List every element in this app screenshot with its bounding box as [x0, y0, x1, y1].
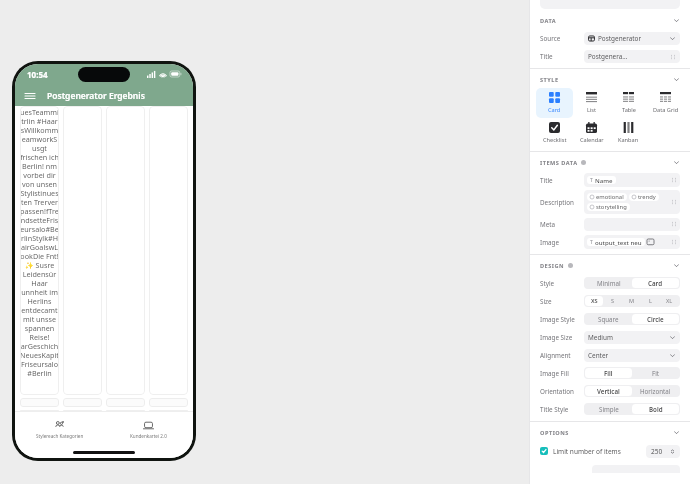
staticText: Image Fill	[540, 369, 584, 378]
staticText: T	[590, 239, 593, 246]
button[interactable]: XS	[585, 296, 603, 306]
staticText: Checklist	[543, 136, 567, 144]
staticText: Fill	[604, 369, 613, 377]
button[interactable]: STYLE	[540, 71, 680, 88]
staticText: Center	[588, 351, 609, 360]
button[interactable]	[63, 106, 102, 395]
staticText: Postgenerator Ergebnis	[588, 52, 629, 61]
button[interactable]: DESIGN	[540, 257, 680, 274]
button[interactable]: Kundenkartei 2.0	[104, 412, 193, 446]
button[interactable]: Postgenerator	[588, 32, 676, 45]
button[interactable]: T	[587, 176, 677, 184]
button[interactable]: Fit	[632, 368, 679, 378]
button[interactable]: Simple	[585, 404, 632, 414]
staticText: Description	[540, 198, 584, 207]
button[interactable]: Kanban	[610, 118, 647, 148]
button[interactable]: ITEMS DATA	[540, 154, 680, 171]
button[interactable]: emotional	[587, 193, 677, 211]
button[interactable]: Medium	[588, 331, 676, 344]
button[interactable]: Table	[610, 88, 647, 118]
button[interactable]	[106, 398, 145, 407]
staticText: Orientation	[540, 387, 584, 396]
staticText: Minimal	[597, 279, 621, 287]
staticText: trendy	[638, 193, 656, 201]
button[interactable]: Center	[588, 349, 676, 362]
staticText: Calendar	[580, 136, 604, 144]
staticText: Style	[540, 279, 584, 288]
button[interactable]: uesTeammitrlin #HaarsWillkommeamworkSusg…	[20, 106, 59, 395]
staticText: Title	[540, 52, 584, 61]
staticText: Kanban	[618, 136, 639, 144]
staticText: Simple	[599, 405, 619, 413]
staticText: Fit	[652, 369, 660, 377]
button[interactable]	[149, 398, 188, 407]
button[interactable]: Stylereach Kategorien	[15, 412, 104, 446]
button[interactable]: Postgenerator Ergebnis	[588, 50, 676, 63]
button[interactable]: XL	[660, 296, 679, 306]
staticText: 10:54	[27, 69, 48, 80]
button[interactable]: Menu	[23, 89, 37, 103]
staticText: storytelling	[596, 203, 627, 211]
staticText: List	[587, 106, 597, 114]
button[interactable]: Calendar	[573, 118, 610, 148]
button[interactable]: OPTIONS	[540, 424, 680, 441]
button[interactable]: Minimal	[585, 278, 632, 288]
staticText: Card	[648, 279, 663, 287]
button[interactable]: DATA	[540, 12, 680, 29]
staticText: Bold	[649, 405, 663, 413]
staticText: DESIGN	[540, 262, 565, 270]
button[interactable]: T	[587, 238, 677, 246]
button[interactable]: 250	[651, 445, 675, 458]
button[interactable]: Horizontal	[632, 386, 679, 396]
staticText: Card	[548, 106, 561, 114]
staticText: emotional	[596, 193, 624, 201]
button[interactable]	[149, 106, 188, 395]
button[interactable]	[587, 221, 677, 228]
staticText: output_text neu	[595, 238, 642, 246]
staticText: 250	[651, 447, 663, 456]
staticText: Title Style	[540, 405, 584, 414]
staticText: Vertical	[597, 387, 620, 395]
button[interactable]: Checklist	[536, 118, 573, 148]
staticText: S	[611, 297, 615, 305]
button[interactable]: Limit number of items	[540, 441, 680, 461]
button[interactable]	[106, 106, 145, 395]
button[interactable]: Vertical	[585, 386, 632, 396]
staticText: Alignment	[540, 351, 584, 360]
button[interactable]: List	[573, 88, 610, 118]
staticText: Postgenerator	[598, 34, 642, 43]
staticText: Size	[540, 297, 584, 306]
staticText: Image Style	[540, 315, 584, 324]
staticText: Stylereach Kategorien	[36, 433, 84, 439]
button[interactable]: Square	[585, 314, 632, 324]
staticText: Source	[540, 34, 584, 43]
staticText: Circle	[647, 315, 664, 323]
staticText: Meta	[540, 220, 584, 229]
button[interactable]: Bold	[632, 404, 679, 414]
button[interactable]	[63, 398, 102, 407]
button[interactable]: L	[641, 296, 660, 306]
staticText: Name	[595, 176, 613, 184]
button[interactable]: Circle	[632, 314, 679, 324]
staticText: Image	[540, 238, 584, 247]
button[interactable]: Card	[536, 88, 573, 118]
button[interactable]: M	[622, 296, 641, 306]
staticText: Medium	[588, 333, 613, 342]
staticText: Image Size	[540, 333, 584, 342]
staticText: T	[590, 177, 593, 184]
button[interactable]: Fill	[585, 368, 632, 378]
staticText: DATA	[540, 17, 557, 25]
staticText: Table	[622, 106, 636, 114]
staticText: uesTeammitrlin #HaarsWillkommeamworkSusg…	[20, 107, 59, 378]
staticText: XL	[666, 297, 673, 305]
staticText: STYLE	[540, 76, 559, 84]
staticText: Kundenkartei 2.0	[130, 433, 167, 439]
button[interactable]: S	[603, 296, 622, 306]
button[interactable]	[20, 398, 59, 407]
button[interactable]: Data Grid	[647, 88, 684, 118]
button[interactable]: Card	[632, 278, 679, 288]
